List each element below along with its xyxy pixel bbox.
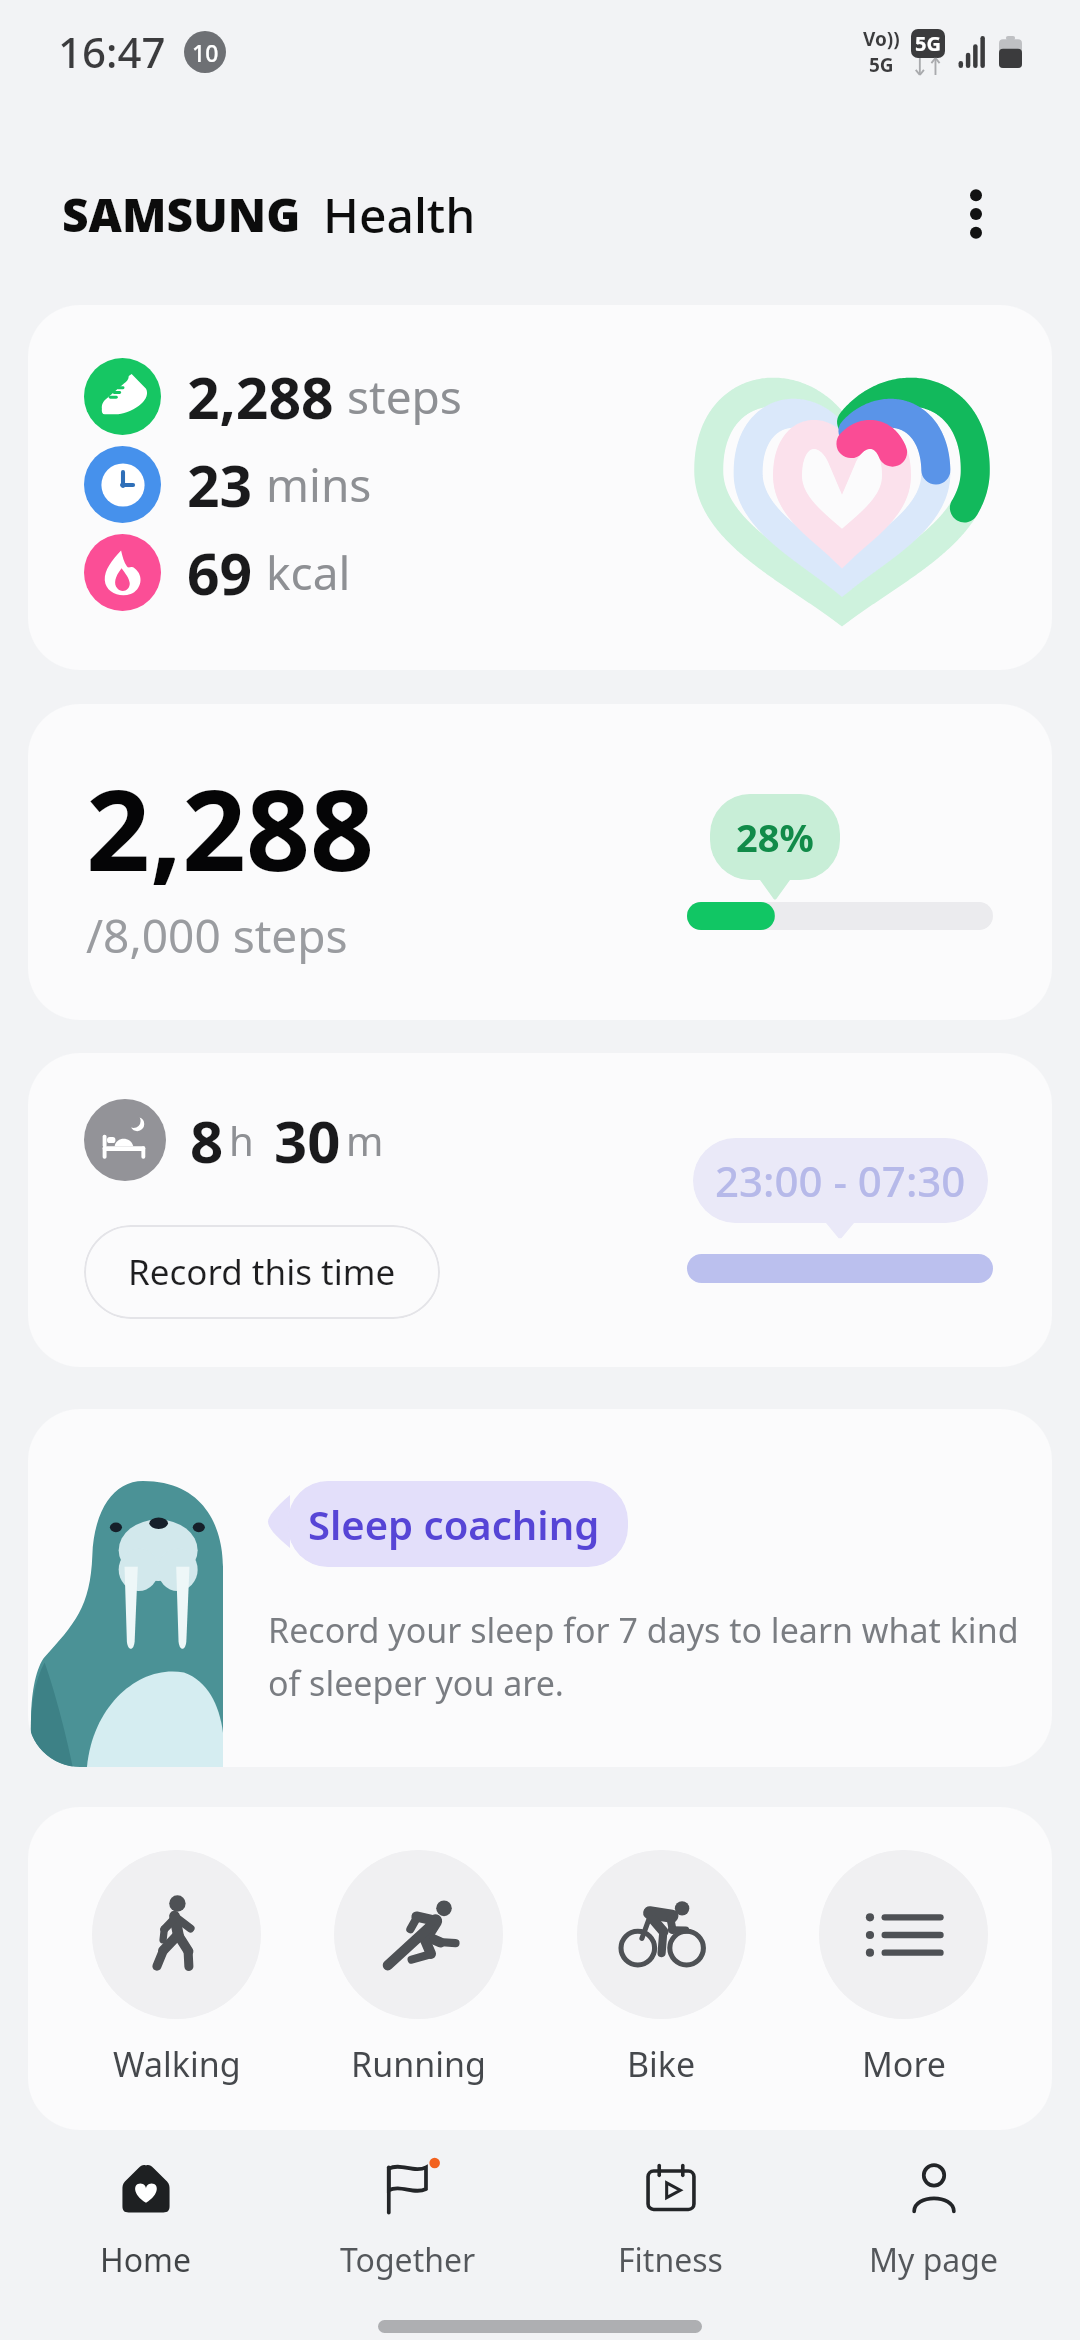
staticText: Home bbox=[100, 2238, 192, 2282]
staticText: steps bbox=[347, 365, 462, 428]
staticText: Health bbox=[323, 182, 476, 247]
button[interactable]: Together bbox=[277, 2130, 539, 2290]
staticText: Record your sleep for 7 days to learn wh… bbox=[268, 1607, 1028, 1706]
staticText: 5G bbox=[915, 30, 941, 57]
button[interactable]: My page bbox=[802, 2130, 1065, 2290]
button[interactable]: Walking bbox=[92, 1842, 261, 2095]
staticText: 2,288 bbox=[86, 751, 375, 904]
button[interactable]: 2,288 bbox=[28, 305, 1052, 670]
staticText: 10 bbox=[192, 37, 219, 68]
button[interactable]: Sleep coaching bbox=[28, 1409, 1052, 1767]
button[interactable]: 2,288 bbox=[28, 704, 1052, 1020]
staticText: 2,288 bbox=[187, 358, 334, 435]
button[interactable]: 8 bbox=[28, 1053, 1052, 1367]
staticText: Sleep coaching bbox=[308, 1497, 600, 1551]
button[interactable]: More options bbox=[930, 168, 1022, 260]
button[interactable]: Running bbox=[334, 1842, 503, 2095]
staticText: kcal bbox=[266, 541, 351, 604]
staticText: Fitness bbox=[618, 2238, 723, 2282]
staticText: 69 bbox=[187, 534, 253, 611]
button[interactable]: Fitness bbox=[539, 2130, 802, 2290]
button[interactable]: More bbox=[819, 1842, 988, 2095]
staticText: 30 bbox=[274, 1101, 341, 1180]
staticText: 5G bbox=[869, 52, 894, 78]
staticText: Running bbox=[351, 2041, 486, 2087]
button[interactable]: Record this time bbox=[84, 1225, 440, 1319]
staticText: Together bbox=[340, 2238, 476, 2282]
staticText: 8 bbox=[190, 1101, 224, 1180]
staticText: 28% bbox=[736, 811, 814, 863]
staticText: 23:00 - 07:30 bbox=[715, 1152, 966, 1209]
button[interactable]: Bike bbox=[577, 1842, 746, 2095]
staticText: /8,000 steps bbox=[86, 904, 348, 967]
staticText: SAMSUNG bbox=[62, 183, 301, 246]
button[interactable]: Home bbox=[15, 2130, 277, 2290]
staticText: 16:47 bbox=[58, 23, 166, 80]
staticText: mins bbox=[266, 453, 372, 516]
staticText: Vo)) bbox=[863, 26, 900, 52]
staticText: h bbox=[229, 1113, 254, 1167]
staticText: More bbox=[862, 2041, 946, 2087]
staticText: My page bbox=[869, 2238, 999, 2282]
staticText: 23 bbox=[187, 446, 253, 523]
staticText: Bike bbox=[627, 2041, 696, 2087]
staticText: Record this time bbox=[128, 1248, 396, 1296]
staticText: m bbox=[346, 1113, 384, 1167]
staticText: Walking bbox=[113, 2041, 241, 2087]
